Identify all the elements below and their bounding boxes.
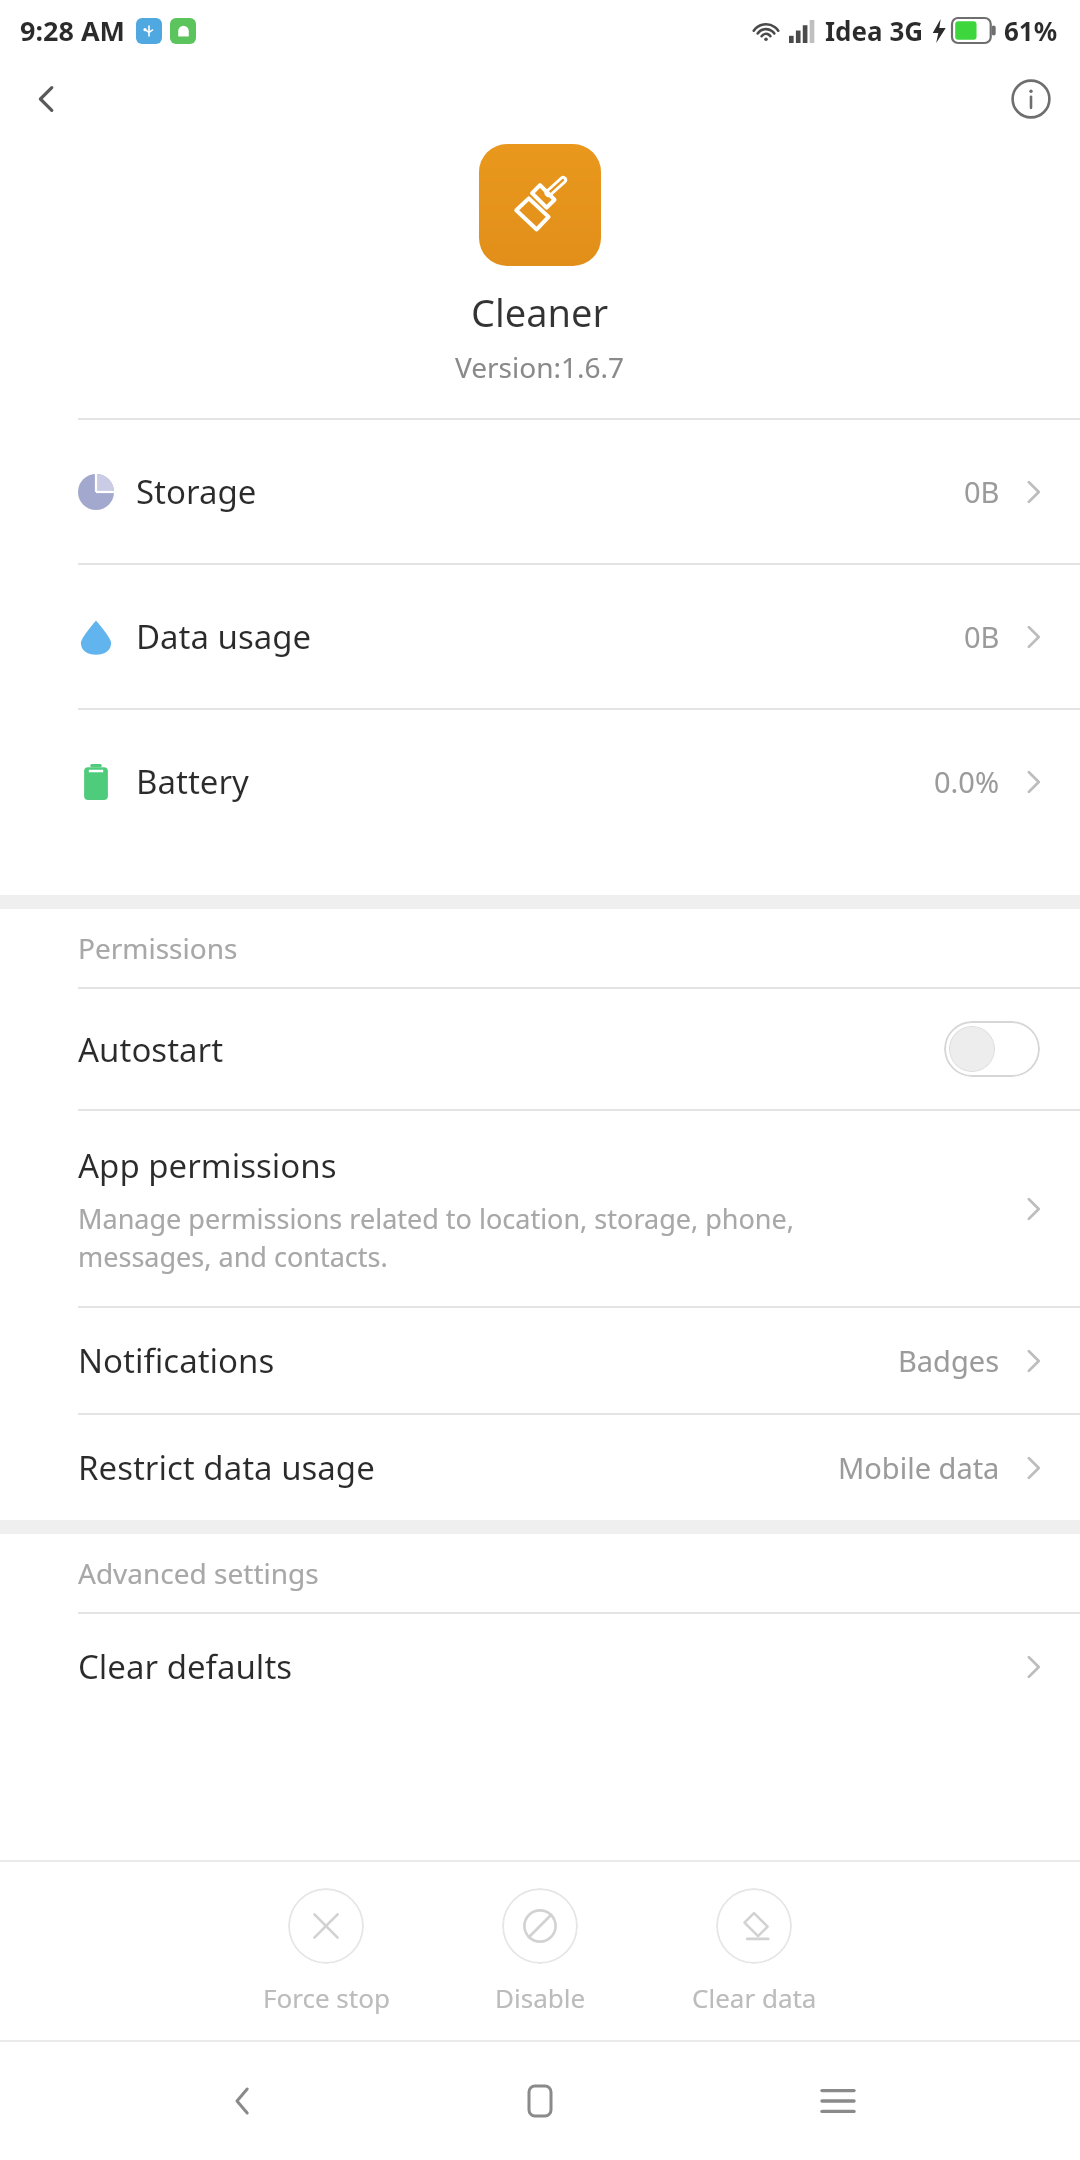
staticText: Cleaner bbox=[471, 286, 609, 338]
button[interactable]: Back bbox=[14, 66, 80, 132]
staticText: Restrict data usage bbox=[78, 1445, 375, 1490]
staticText: Mobile data bbox=[838, 1448, 1000, 1487]
staticText: Permissions bbox=[78, 929, 238, 967]
staticText: 61% bbox=[1004, 13, 1058, 48]
staticText: Data usage bbox=[136, 614, 312, 659]
button[interactable]: Disable bbox=[450, 1884, 630, 2019]
button[interactable]: Storage bbox=[0, 420, 1080, 563]
staticText: Notifications bbox=[78, 1338, 275, 1383]
button[interactable]: Battery bbox=[0, 710, 1080, 853]
staticText: 0B bbox=[964, 472, 1000, 511]
button[interactable]: Back bbox=[188, 2046, 298, 2156]
staticText: Idea 3G bbox=[825, 13, 924, 48]
staticText: 0.0% bbox=[934, 762, 1000, 801]
button[interactable]: Clear defaults bbox=[0, 1614, 1080, 1719]
staticText: Advanced settings bbox=[78, 1554, 319, 1592]
button[interactable]: Autostart bbox=[0, 989, 1080, 1109]
staticText: 9:28 AM bbox=[20, 12, 126, 49]
staticText: Force stop bbox=[263, 1980, 390, 2015]
staticText: Badges bbox=[898, 1341, 1000, 1380]
staticText: Battery bbox=[136, 759, 249, 804]
staticText: App permissions bbox=[78, 1143, 337, 1188]
staticText: Clear data bbox=[692, 1980, 817, 2015]
button[interactable]: Recents bbox=[783, 2046, 893, 2156]
staticText: Clear defaults bbox=[78, 1644, 293, 1689]
button[interactable]: App permissions bbox=[0, 1111, 1080, 1306]
button[interactable]: Force stop bbox=[236, 1884, 416, 2019]
staticText: 0B bbox=[964, 617, 1000, 656]
button[interactable]: Restrict data usage bbox=[0, 1415, 1080, 1520]
staticText: Version:1.6.7 bbox=[455, 348, 625, 386]
staticText: Autostart bbox=[78, 1027, 224, 1072]
button[interactable]: Autostart toggle bbox=[944, 1021, 1040, 1077]
button[interactable]: App info bbox=[998, 66, 1064, 132]
button[interactable]: Data usage bbox=[0, 565, 1080, 708]
button[interactable]: Notifications bbox=[0, 1308, 1080, 1413]
staticText: Disable bbox=[495, 1980, 586, 2015]
staticText: Manage permissions related to location, … bbox=[78, 1200, 795, 1275]
button[interactable]: Clear data bbox=[664, 1884, 844, 2019]
staticText: Storage bbox=[136, 469, 257, 514]
button[interactable]: Home bbox=[485, 2046, 595, 2156]
